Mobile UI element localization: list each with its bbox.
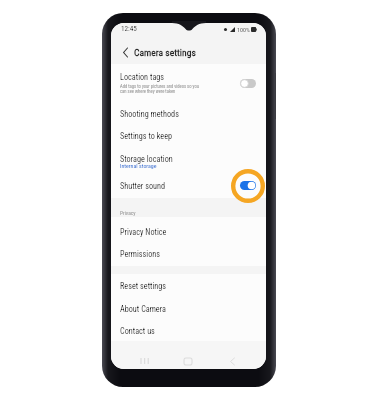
button[interactable]: Settings to keep xyxy=(111,125,266,147)
staticText: Privacy Notice xyxy=(120,227,167,237)
button[interactable]: Contact us xyxy=(111,320,266,342)
staticText: Shooting methods xyxy=(120,109,179,119)
button[interactable]: Location tags xyxy=(111,66,266,88)
button[interactable]: Privacy Notice xyxy=(111,221,266,243)
staticText: Storage location xyxy=(120,154,173,164)
button[interactable]: Home xyxy=(178,351,198,369)
staticText: Camera settings xyxy=(134,47,196,58)
button[interactable]: Permissions xyxy=(111,243,266,265)
staticText: Add tags to your pictures and videos so … xyxy=(120,84,199,94)
staticText: 100% xyxy=(237,26,250,33)
button[interactable]: Shutter sound xyxy=(111,175,266,197)
button[interactable]: Back xyxy=(115,42,135,62)
staticText: Contact us xyxy=(120,326,155,336)
staticText: Settings to keep xyxy=(120,131,173,141)
staticText: Permissions xyxy=(120,249,161,259)
button[interactable]: Shooting methods xyxy=(111,103,266,125)
staticText: Shutter sound xyxy=(120,181,166,191)
button[interactable]: Reset settings xyxy=(111,275,266,297)
staticText: 12:45 xyxy=(121,24,137,32)
staticText: About Camera xyxy=(120,304,166,314)
staticText: Reset settings xyxy=(120,281,167,291)
staticText: Internal storage xyxy=(120,163,157,170)
staticText: Privacy xyxy=(120,210,136,216)
button[interactable]: About Camera xyxy=(111,298,266,320)
button[interactable]: Storage location xyxy=(111,148,266,170)
staticText: Location tags xyxy=(120,72,165,82)
button[interactable]: Recent apps xyxy=(134,351,154,369)
